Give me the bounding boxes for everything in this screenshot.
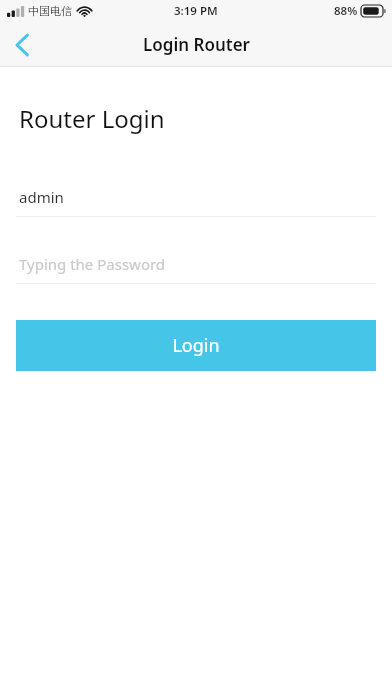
staticText: Login Router <box>143 33 250 56</box>
staticText: 中国电信 <box>28 4 72 18</box>
staticText: 88% <box>334 3 358 19</box>
staticText: Typing the Password <box>19 254 166 274</box>
button[interactable]: admin <box>0 178 392 217</box>
button[interactable]: Back <box>0 23 44 67</box>
staticText: Login <box>172 333 220 358</box>
staticText: 3:19 PM <box>174 3 218 19</box>
button[interactable]: Typing the Password <box>0 245 392 284</box>
button[interactable]: Login <box>16 320 376 371</box>
staticText: admin <box>19 187 64 207</box>
staticText: Router Login <box>19 102 165 135</box>
